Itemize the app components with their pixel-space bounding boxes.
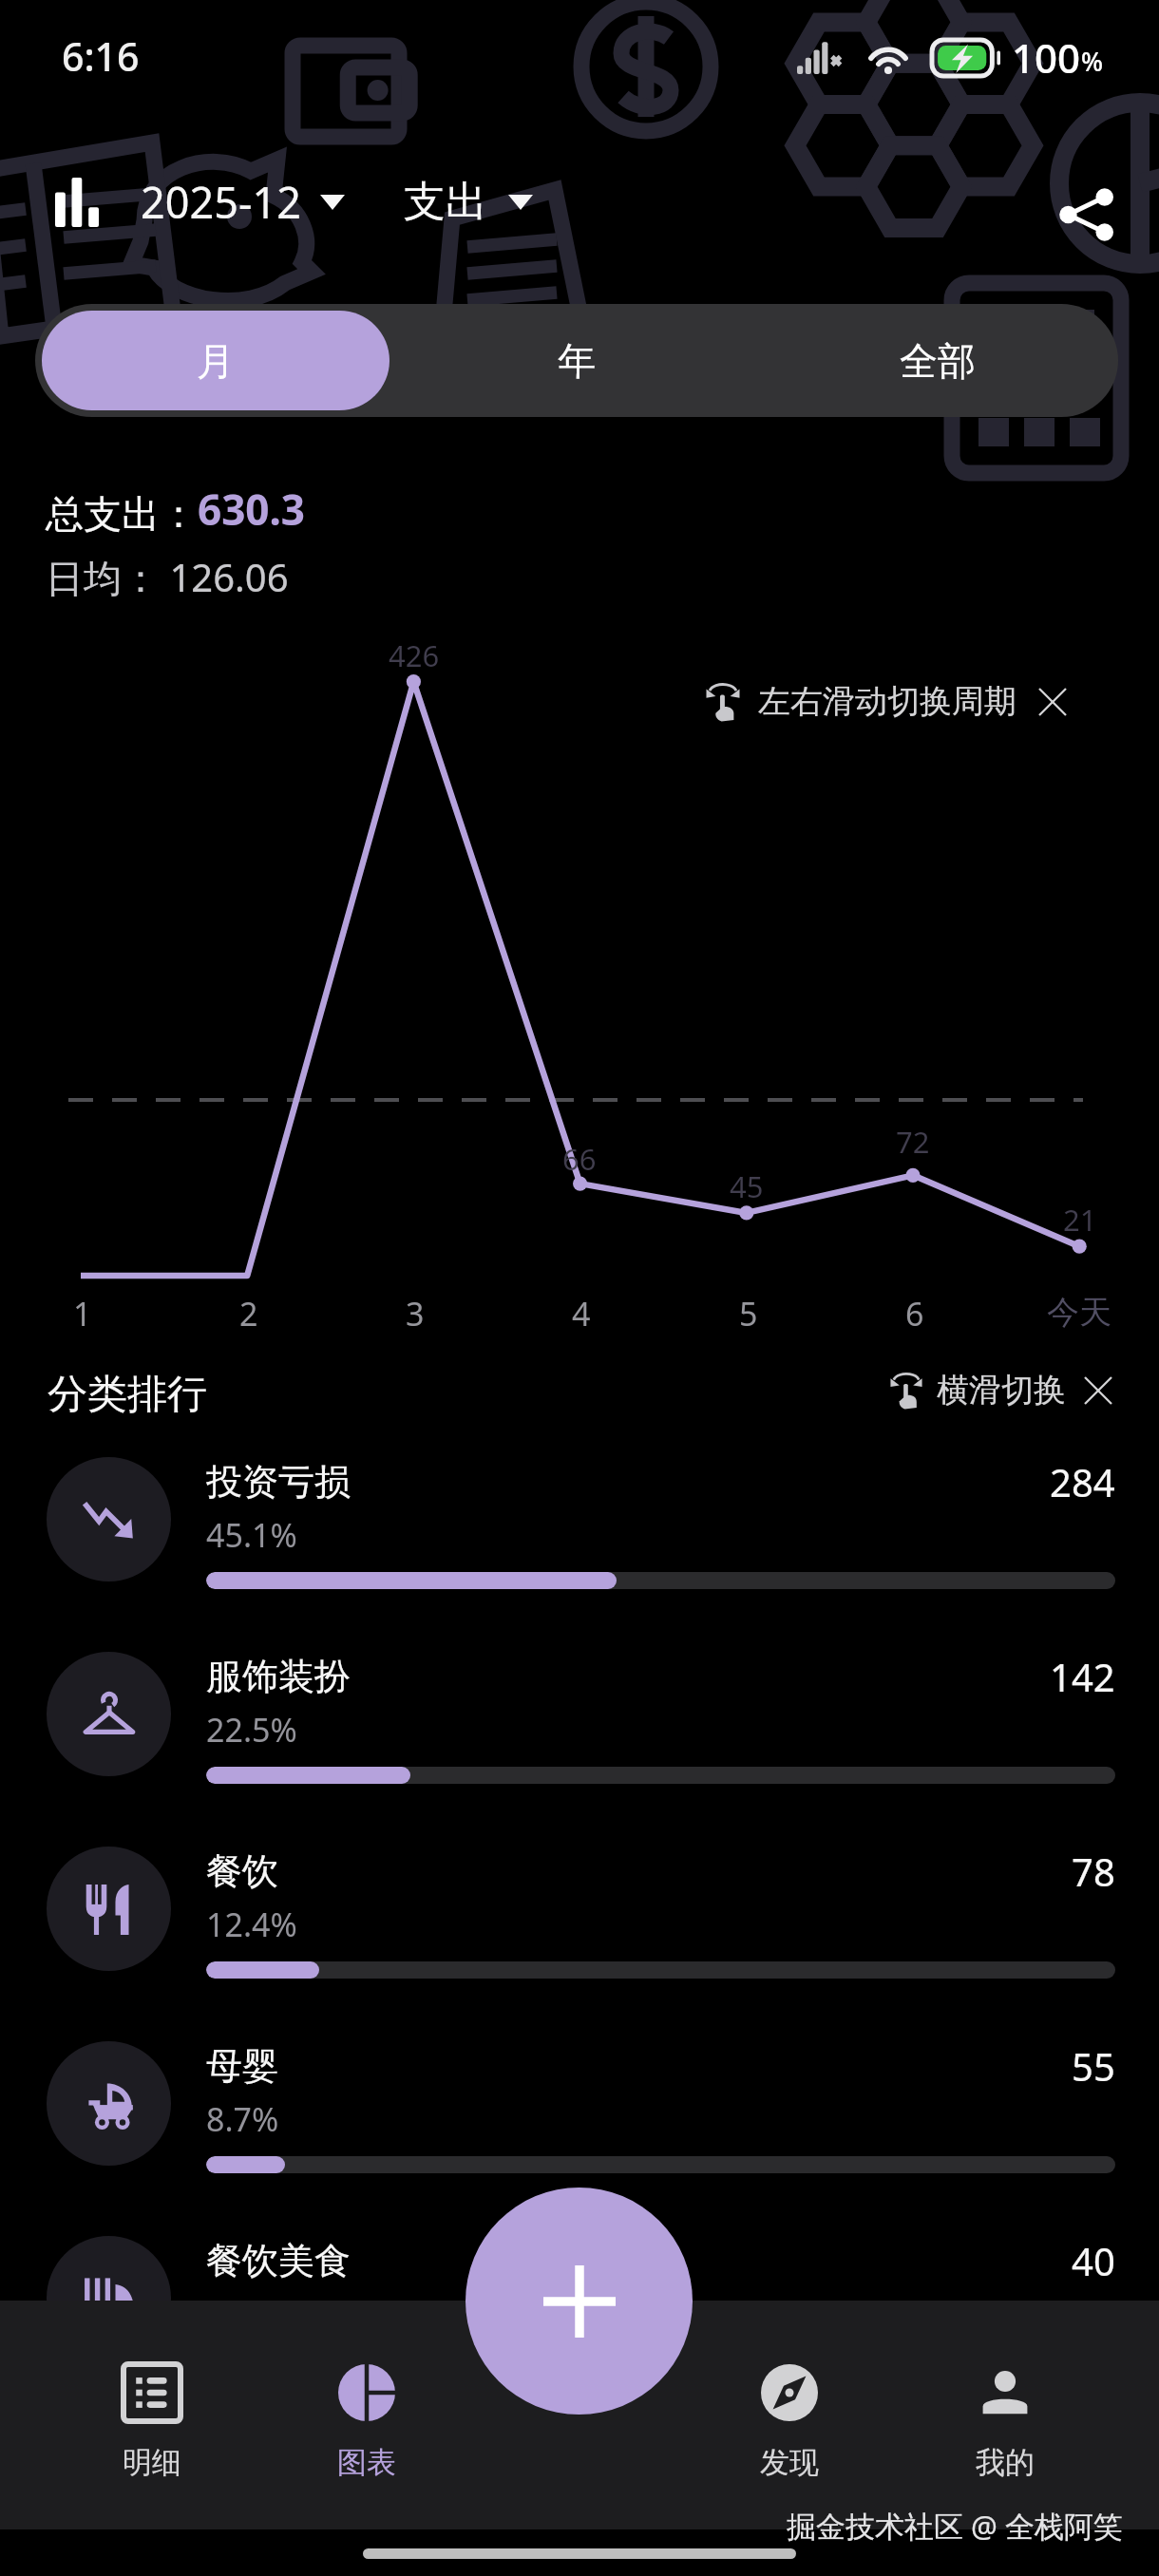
staticText: 12.4% [206,1903,297,1946]
button[interactable]: 支出 [400,162,537,241]
staticText: 5 [739,1292,758,1335]
staticText: 2 [239,1292,258,1335]
button[interactable]: 全部 [764,311,1111,410]
button[interactable]: 月 [42,311,389,410]
staticText: 2025-12 [141,173,301,231]
button[interactable]: Close hint [1081,1373,1115,1408]
button[interactable]: Share [1049,178,1123,252]
staticText: 分类排行 [47,1370,207,1420]
button[interactable]: 母婴 [0,2004,1159,2199]
staticText: 掘金技术社区 @ 全栈阿笑 [787,2506,1123,2546]
staticText: 横滑切换 [937,1370,1066,1411]
staticText: 左右滑动切换周期 [758,681,1016,722]
staticText: 3 [406,1292,425,1335]
staticText: 餐饮美食 [206,2238,351,2283]
staticText: 45.1% [206,1513,297,1557]
staticText: 日均： 126.06 [46,551,289,603]
staticText: 餐饮 [206,1848,278,1894]
staticText: 21 [1063,1200,1097,1240]
staticText: 45 [730,1166,764,1206]
button[interactable]: 服饰装扮 [0,1615,1159,1809]
button[interactable]: 餐饮 [0,1809,1159,2004]
button[interactable]: 2025-12 [137,160,349,244]
staticText: 630.3 [198,481,306,538]
staticText: 服饰装扮 [206,1654,351,1699]
staticText: 母婴 [206,2043,278,2089]
staticText: 4 [572,1292,591,1335]
staticText: 6 [905,1292,924,1335]
staticText: 全部 [900,337,976,385]
staticText: 100 [1012,30,1081,85]
button[interactable]: Close hint [1035,685,1070,719]
staticText: 284 [1050,1456,1115,1507]
staticText: % [1081,44,1104,79]
button[interactable]: 图表 [310,2346,424,2481]
staticText: 66 [562,1139,597,1179]
staticText: 今天 [1047,1292,1111,1333]
button[interactable]: 投资亏损 [0,1420,1159,1615]
staticText: 支出 [404,176,487,228]
staticText: 426 [389,635,440,675]
staticText: 72 [896,1122,930,1162]
staticText: 投资亏损 [206,1459,351,1505]
staticText: 1 [73,1292,92,1335]
button[interactable]: Chart type [49,172,104,233]
staticText: 22.5% [206,1708,297,1752]
staticText: 55 [1072,2040,1115,2092]
staticText: 年 [558,337,596,385]
button[interactable]: 发现 [732,2346,846,2481]
staticText: 图表 [337,2444,396,2481]
staticText: 142 [1050,1651,1115,1702]
button[interactable]: Add [465,2188,693,2415]
button[interactable]: 明细 [95,2346,209,2481]
staticText: 月 [197,337,235,385]
staticText: 78 [1072,1846,1115,1897]
staticText: 总支出： [46,490,198,538]
button[interactable]: 我的 [948,2346,1062,2481]
staticText: 6.3% [206,2292,279,2336]
staticText: 40 [1072,2235,1115,2286]
staticText: 6:16 [62,29,140,83]
staticText: 8.7% [206,2097,279,2141]
staticText: 明细 [123,2444,181,2481]
button[interactable]: 餐饮美食 [0,2199,1159,2394]
staticText: 发现 [760,2444,819,2481]
button[interactable]: 年 [403,311,750,410]
staticText: 我的 [976,2444,1035,2481]
